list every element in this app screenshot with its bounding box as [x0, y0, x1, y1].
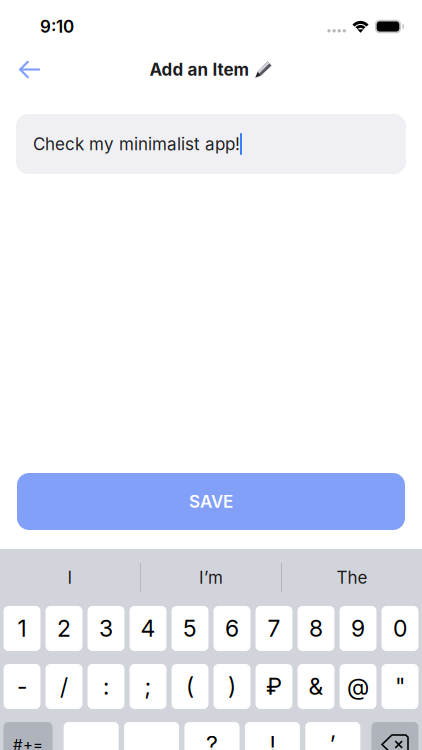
staticText: -	[17, 673, 27, 700]
staticText: 8	[309, 615, 323, 642]
button[interactable]: 3	[88, 606, 124, 651]
button[interactable]: 4	[130, 606, 166, 651]
button[interactable]: 5	[172, 606, 208, 651]
button[interactable]: 8	[298, 606, 334, 651]
button[interactable]: SAVE	[17, 473, 405, 530]
button[interactable]: ₽	[256, 664, 292, 709]
staticText: 6	[225, 615, 239, 642]
staticText: 3	[99, 615, 113, 642]
staticText: #+=	[13, 735, 43, 750]
button[interactable]: )	[214, 664, 250, 709]
button[interactable]: The	[282, 549, 422, 606]
button[interactable]: 0	[382, 606, 418, 651]
button[interactable]: Back	[8, 47, 52, 91]
button[interactable]: ;	[130, 664, 166, 709]
staticText: (	[186, 673, 194, 700]
staticText: @	[347, 673, 369, 700]
button[interactable]: ?	[184, 722, 239, 750]
staticText: I	[67, 567, 72, 588]
staticText: SAVE	[189, 491, 233, 512]
button[interactable]: !	[245, 722, 300, 750]
staticText: 2	[57, 615, 71, 642]
staticText: ?	[206, 731, 218, 750]
staticText: 4	[140, 615, 155, 642]
button[interactable]: :	[88, 664, 124, 709]
button[interactable]: Delete	[371, 722, 418, 750]
staticText: &	[308, 673, 323, 700]
staticText: 0	[393, 615, 407, 642]
staticText: !	[269, 731, 275, 750]
staticText: ;	[144, 673, 151, 700]
staticText: 5	[183, 615, 197, 642]
button[interactable]: "	[382, 664, 418, 709]
staticText: I’m	[199, 567, 223, 588]
button[interactable]: /	[46, 664, 82, 709]
button[interactable]: 6	[214, 606, 250, 651]
staticText: 9	[351, 615, 365, 642]
button[interactable]: I’m	[141, 549, 281, 606]
staticText: 9:10	[40, 16, 74, 37]
button[interactable]: ,	[124, 722, 179, 750]
button[interactable]: #+=	[3, 722, 52, 750]
staticText: Add an Item	[149, 59, 249, 80]
button[interactable]: 1	[4, 606, 40, 651]
button[interactable]: 2	[46, 606, 82, 651]
staticText: ’	[330, 731, 336, 750]
button[interactable]: 9	[340, 606, 376, 651]
button[interactable]: (	[172, 664, 208, 709]
staticText: /	[60, 673, 68, 700]
button[interactable]: @	[340, 664, 376, 709]
button[interactable]: -	[4, 664, 40, 709]
button[interactable]: ’	[305, 722, 360, 750]
button[interactable]: I	[0, 549, 140, 606]
staticText: )	[228, 673, 236, 700]
staticText: 7	[267, 615, 280, 642]
staticText: :	[103, 673, 109, 700]
staticText: 1	[17, 615, 26, 642]
button[interactable]: 7	[256, 606, 292, 651]
button[interactable]: &	[298, 664, 334, 709]
button[interactable]: .	[64, 722, 119, 750]
staticText: Check my minimalist app!	[33, 134, 240, 154]
staticText: The	[336, 567, 367, 588]
staticText: "	[395, 673, 405, 700]
staticText: ₽	[266, 673, 282, 700]
